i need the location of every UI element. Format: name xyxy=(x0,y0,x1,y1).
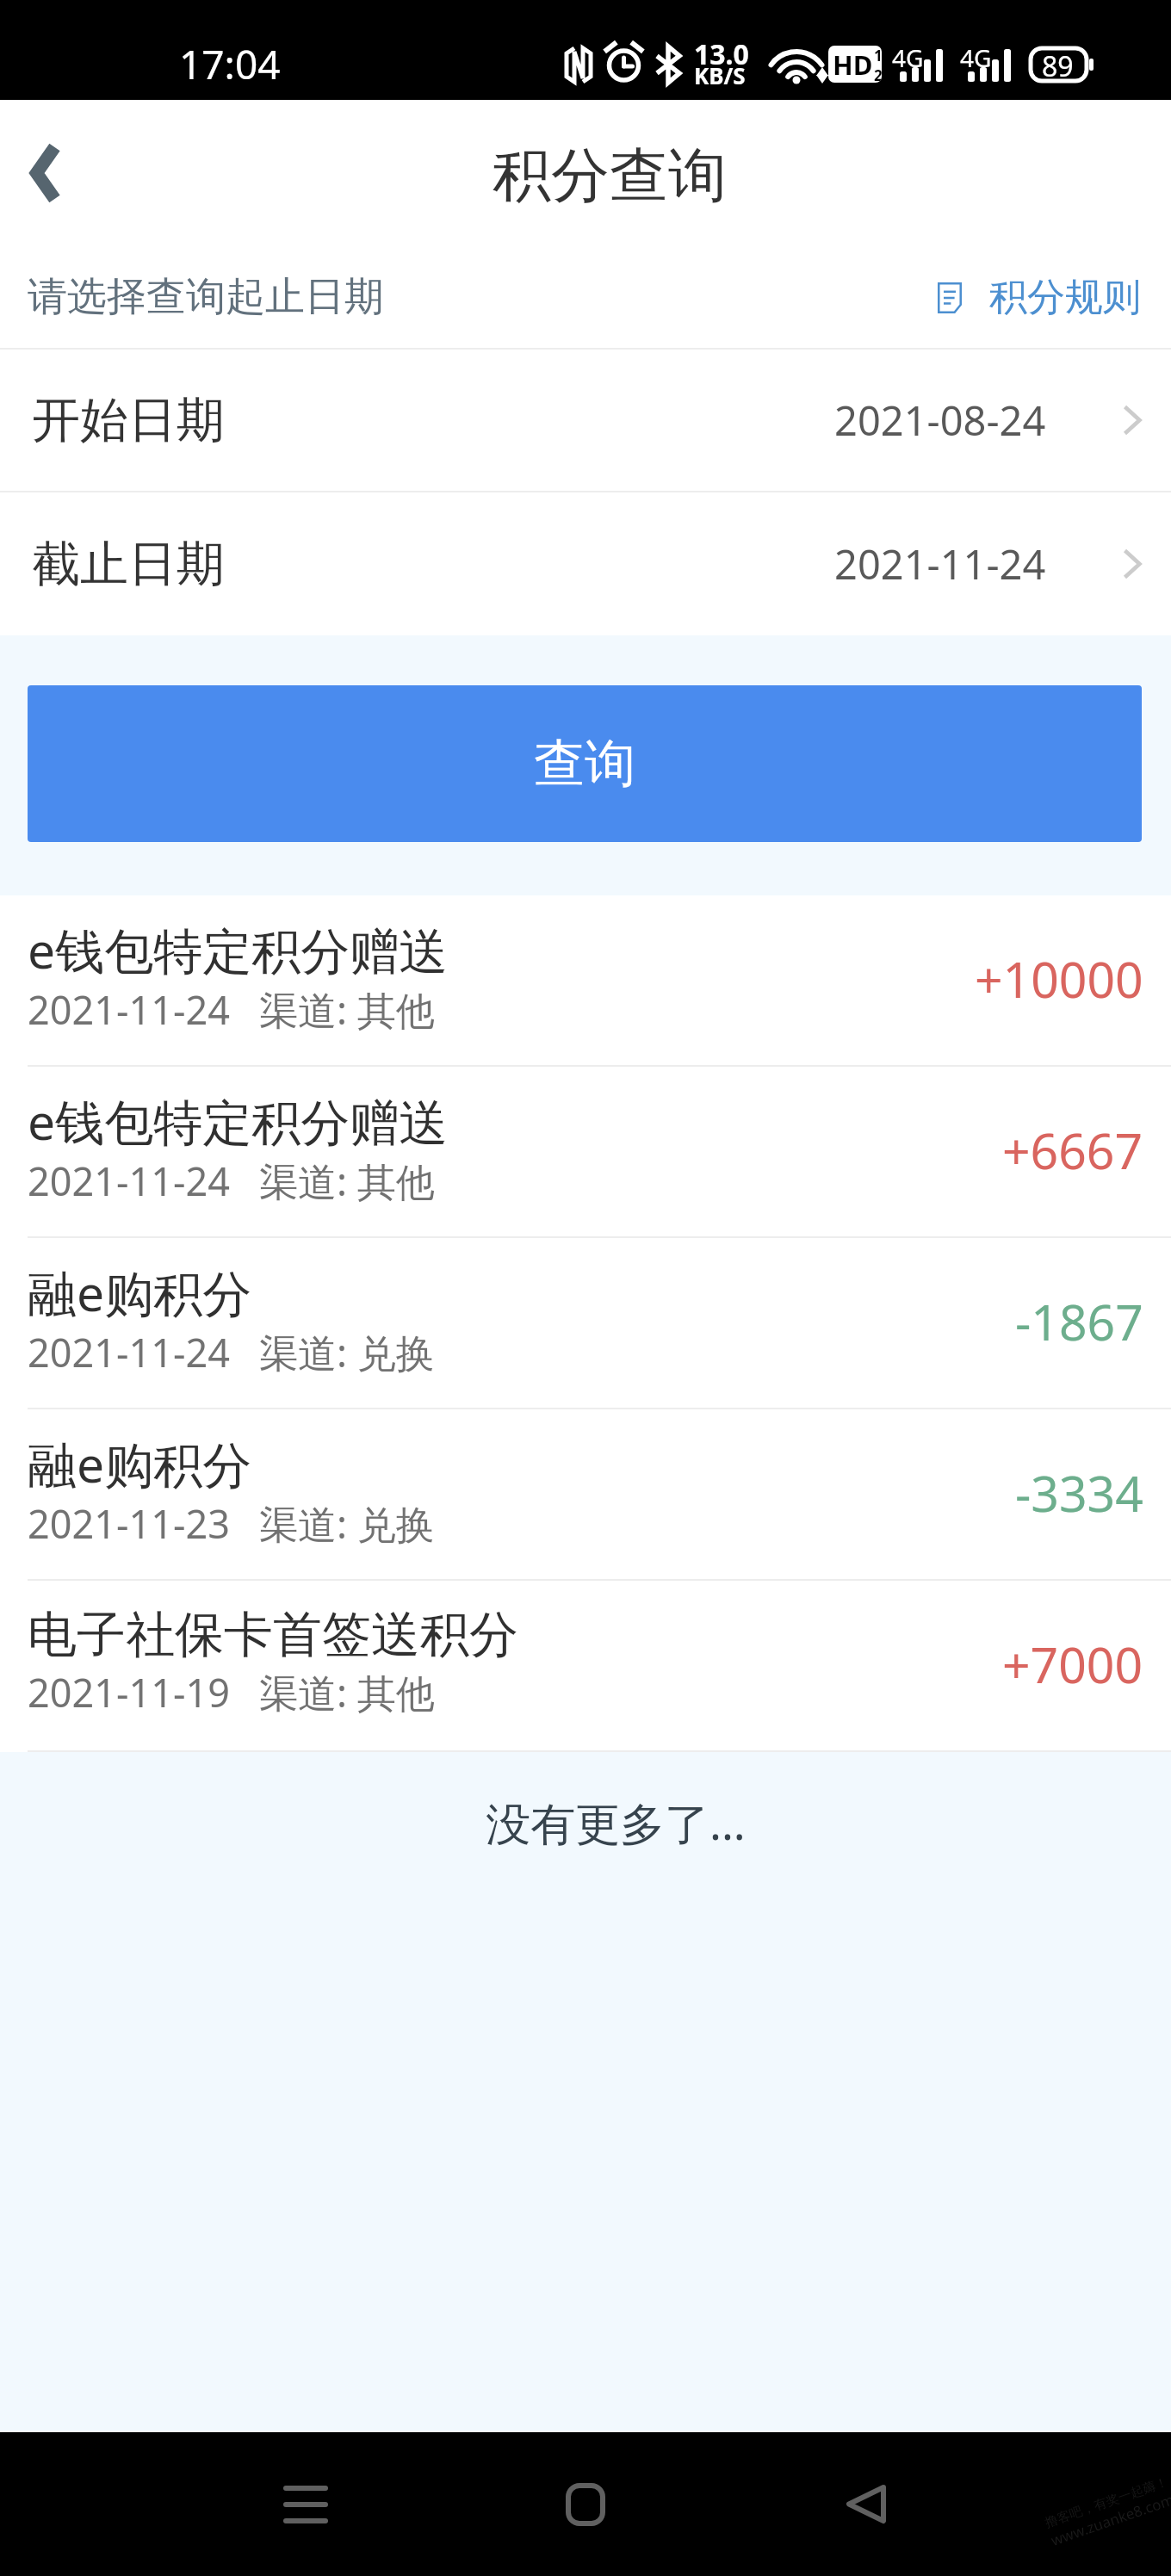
staticText: -3334 xyxy=(1015,1459,1143,1526)
staticText: 截止日期 xyxy=(32,534,225,595)
staticText: www.zuanke8.com xyxy=(1048,2489,1171,2550)
staticText: 积分查询 xyxy=(493,139,727,214)
button[interactable]: 截止日期 xyxy=(0,492,1171,635)
staticText: 89 xyxy=(1042,47,1074,85)
staticText: HD xyxy=(833,46,873,83)
staticText: 融e购积分 xyxy=(28,1430,252,1497)
button[interactable]: 融e购积分 xyxy=(0,1409,1171,1579)
staticText: 17:04 xyxy=(179,37,281,91)
staticText: 渠道: 兑换 xyxy=(259,1326,435,1378)
button[interactable]: 积分规则 xyxy=(938,274,1141,321)
staticText: 撸客吧，有奖一起薅！ xyxy=(1043,2474,1170,2531)
staticText: 请选择查询起止日期 xyxy=(28,272,384,322)
staticText: 2021-11-19 xyxy=(28,1666,230,1718)
staticText: 没有更多了... xyxy=(486,1792,746,1853)
staticText: 4G xyxy=(960,41,992,74)
staticText: 查询 xyxy=(534,732,635,796)
staticText: 渠道: 其他 xyxy=(259,1155,435,1207)
staticText: +7000 xyxy=(1002,1631,1143,1698)
staticText: 2021-11-23 xyxy=(28,1497,230,1550)
staticText: 电子社保卡首签送积分 xyxy=(28,1604,518,1666)
staticText: 13.0 xyxy=(694,35,749,73)
button[interactable]: Recent apps xyxy=(237,2432,375,2576)
staticText: 4G xyxy=(892,41,924,74)
staticText: 融e购积分 xyxy=(28,1259,252,1326)
staticText: e钱包特定积分赠送 xyxy=(28,1087,449,1155)
staticText: 2021-11-24 xyxy=(834,536,1046,591)
staticText: 开始日期 xyxy=(32,390,225,451)
staticText: e钱包特定积分赠送 xyxy=(28,916,449,983)
button[interactable]: Back xyxy=(0,100,91,246)
staticText: 渠道: 其他 xyxy=(259,1666,435,1718)
staticText: 2021-11-24 xyxy=(28,983,230,1036)
staticText: 渠道: 兑换 xyxy=(259,1497,435,1550)
staticText: 2021-11-24 xyxy=(28,1326,230,1378)
staticText: 2021-08-24 xyxy=(834,393,1046,448)
button[interactable]: Back xyxy=(797,2432,935,2576)
staticText: +6667 xyxy=(1002,1117,1143,1184)
button[interactable]: 查询 xyxy=(28,685,1142,842)
staticText: 2 xyxy=(874,65,882,83)
staticText: +10000 xyxy=(975,945,1143,1012)
staticText: 1 xyxy=(874,46,882,65)
button[interactable]: 融e购积分 xyxy=(0,1238,1171,1408)
button[interactable]: e钱包特定积分赠送 xyxy=(0,1067,1171,1236)
staticText: 积分规则 xyxy=(989,274,1141,321)
button[interactable]: e钱包特定积分赠送 xyxy=(0,895,1171,1065)
staticText: -1867 xyxy=(1015,1288,1143,1355)
staticText: 2021-11-24 xyxy=(28,1155,230,1207)
staticText: KB/S xyxy=(694,60,746,90)
button[interactable]: 电子社保卡首签送积分 xyxy=(0,1581,1171,1750)
button[interactable]: 开始日期 xyxy=(0,350,1171,491)
button[interactable]: Home xyxy=(517,2432,654,2576)
staticText: 渠道: 其他 xyxy=(259,983,435,1036)
